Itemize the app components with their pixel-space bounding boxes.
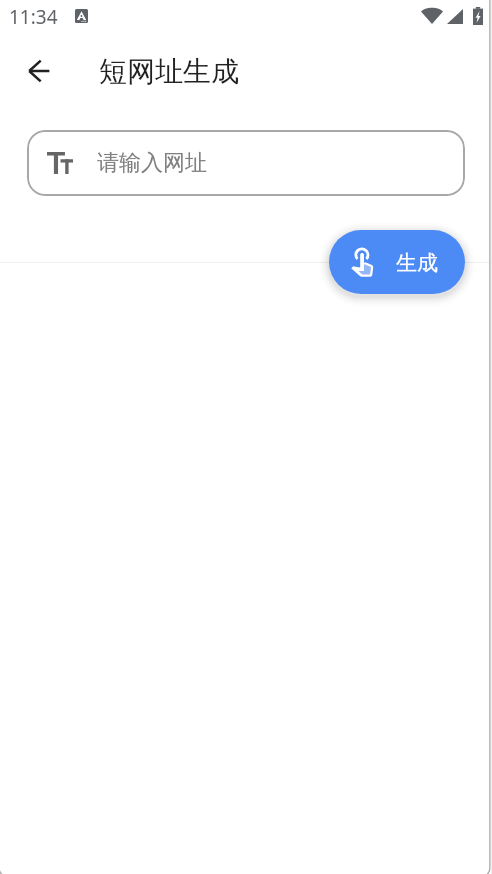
- button[interactable]: 生成: [329, 230, 465, 294]
- staticText: 请输入网址: [97, 149, 207, 177]
- staticText: 短网址生成: [99, 54, 239, 89]
- staticText: 11:34: [9, 4, 58, 30]
- button[interactable]: Back: [15, 47, 63, 95]
- button[interactable]: 请输入网址: [27, 130, 465, 196]
- staticText: 生成: [396, 250, 438, 276]
